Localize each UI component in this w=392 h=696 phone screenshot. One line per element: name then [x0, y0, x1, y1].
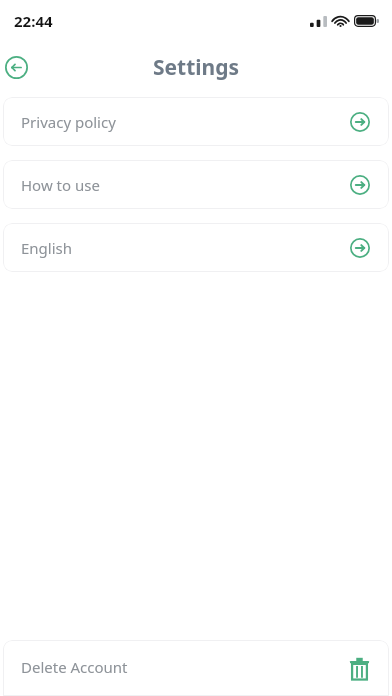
- staticText: Settings: [0, 53, 392, 82]
- staticText: 22:44: [14, 11, 53, 31]
- staticText: Privacy policy: [21, 112, 116, 132]
- staticText: Delete Account: [21, 657, 128, 677]
- button[interactable]: Back: [3, 54, 29, 80]
- button[interactable]: How to use: [3, 160, 389, 209]
- staticText: How to use: [21, 175, 100, 195]
- button[interactable]: Delete Account: [346, 655, 372, 681]
- staticText: English: [21, 238, 73, 258]
- button[interactable]: Privacy policy: [3, 97, 389, 146]
- button[interactable]: Delete Account: [3, 640, 389, 696]
- button[interactable]: English: [3, 223, 389, 272]
